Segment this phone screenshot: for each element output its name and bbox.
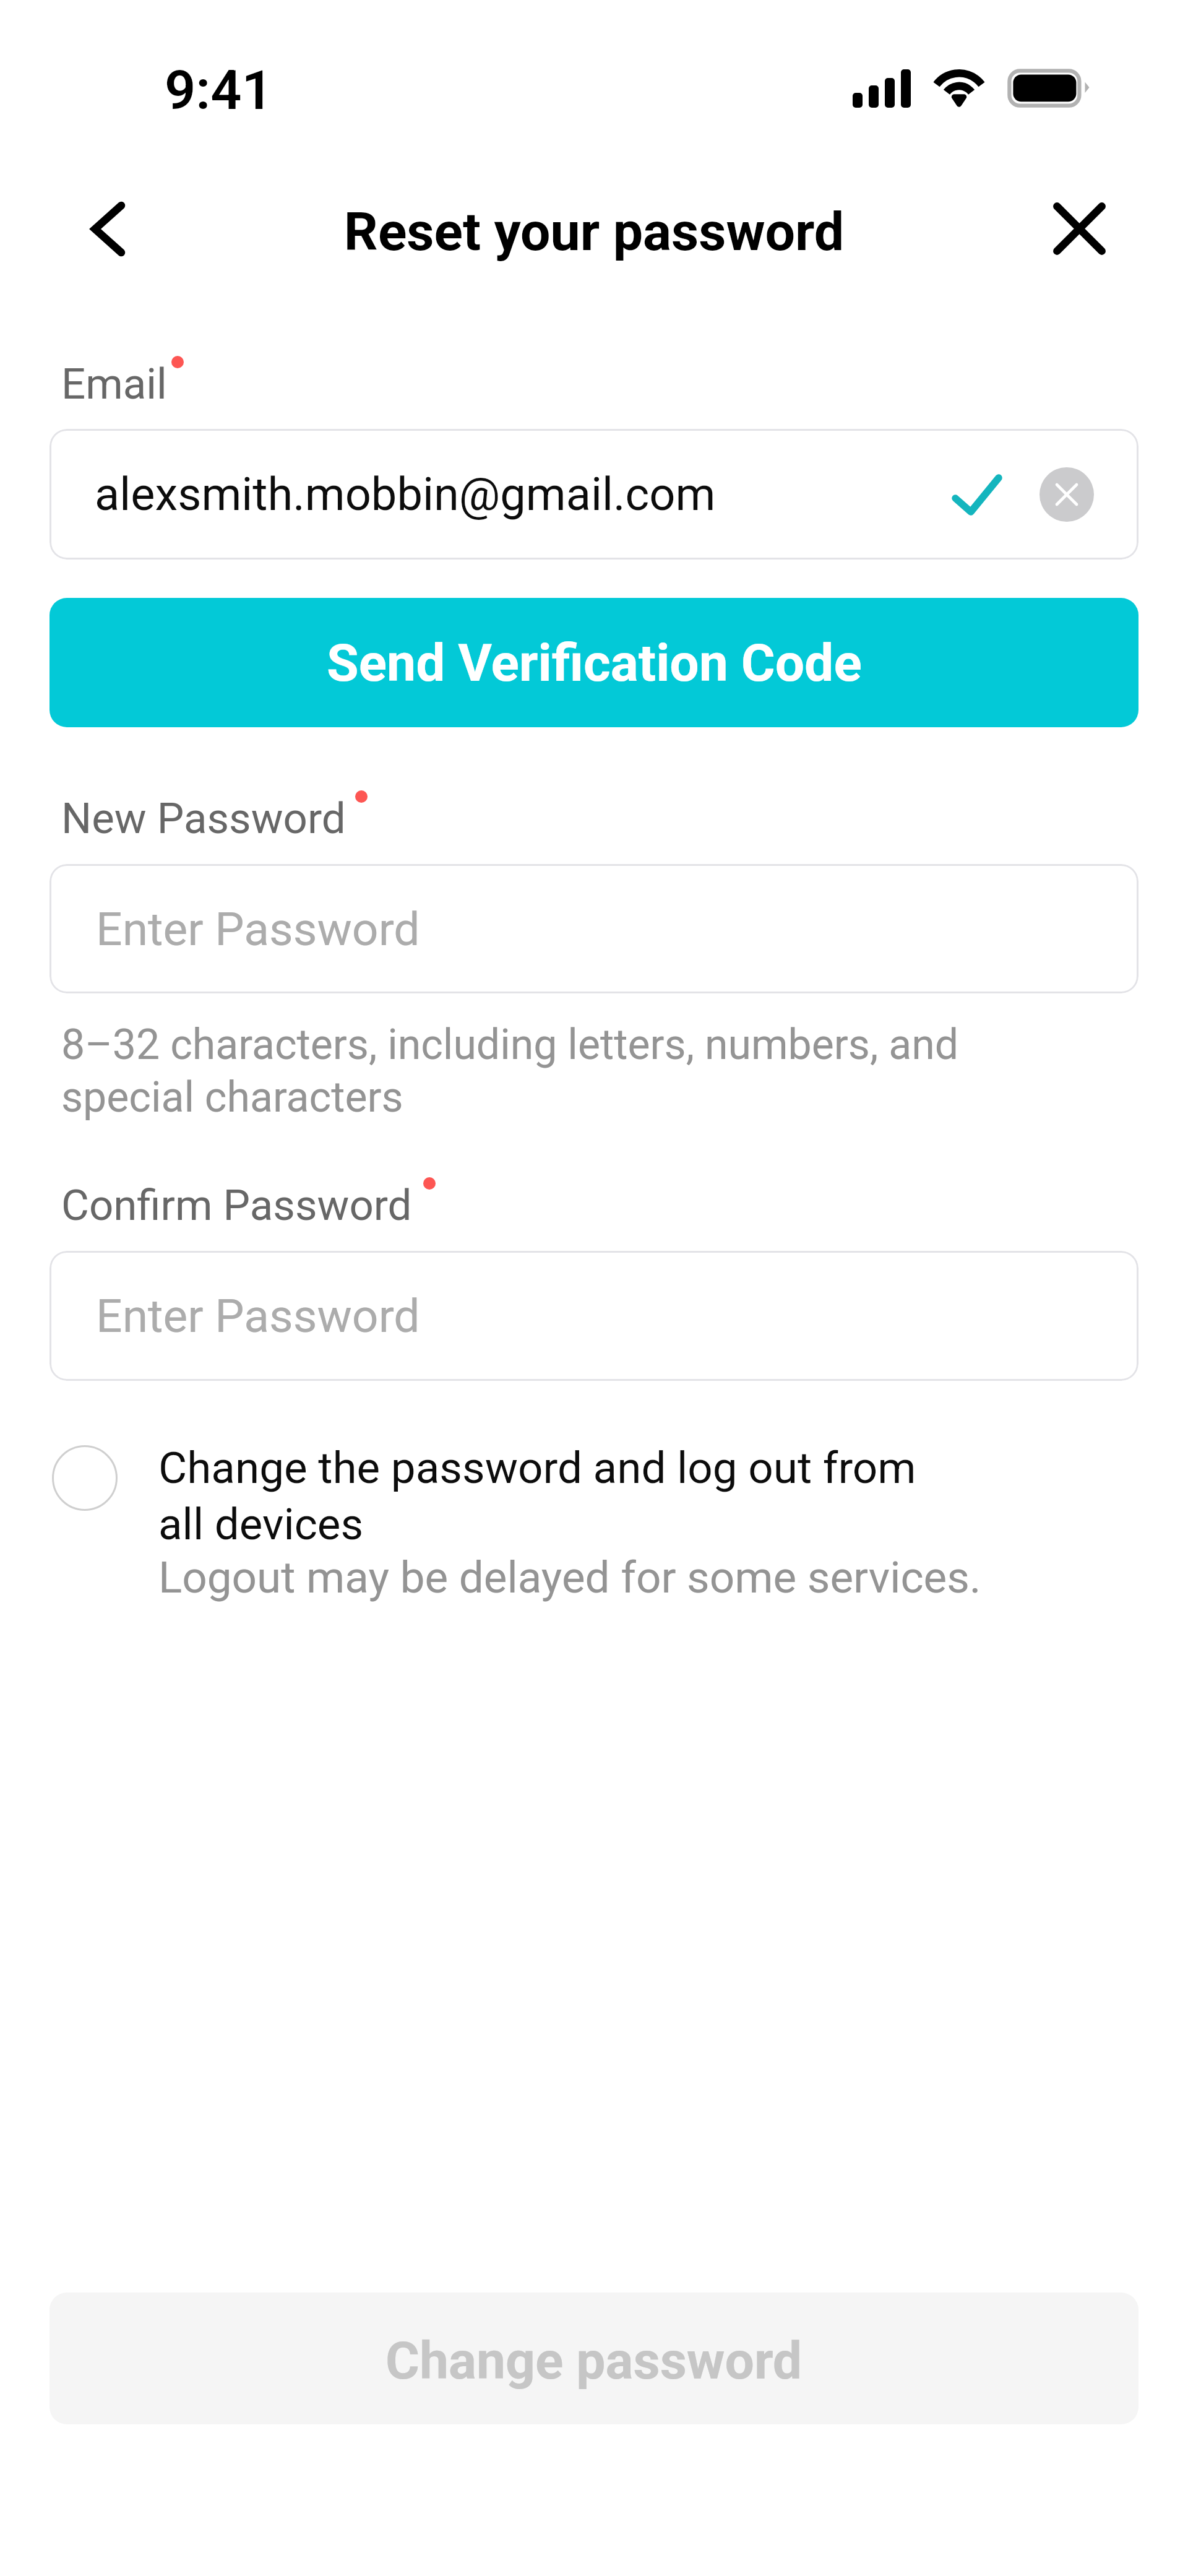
staticText: alexsmith.mobbin@gmail.com <box>95 467 716 521</box>
button[interactable]: Send Verification Code <box>49 598 1138 727</box>
staticText: 9:41 <box>165 58 273 122</box>
staticText: Enter Password <box>96 1289 420 1343</box>
staticText: Enter Password <box>96 902 420 956</box>
staticText: Logout may be delayed for some services. <box>158 1552 981 1603</box>
button[interactable]: Enter Password <box>49 1251 1138 1381</box>
button[interactable]: Close <box>1039 189 1120 269</box>
staticText: Change password <box>385 2330 803 2391</box>
button[interactable]: alexsmith.mobbin@gmail.com <box>49 429 1138 560</box>
staticText: Confirm Password <box>61 1180 412 1230</box>
staticText: Email <box>61 359 167 409</box>
button[interactable]: Enter Password <box>49 864 1138 993</box>
button[interactable]: Change the password and log out from all… <box>49 1442 1015 1603</box>
staticText: New Password <box>61 793 346 844</box>
staticText: 8–32 characters, including letters, numb… <box>61 1020 959 1122</box>
staticText: Send Verification Code <box>327 633 862 693</box>
button[interactable]: Clear email <box>1039 467 1094 522</box>
staticText: Reset your password <box>0 201 1188 263</box>
button[interactable]: Change password <box>49 2293 1138 2424</box>
staticText: Change the password and log out from all… <box>158 1442 916 1550</box>
button[interactable]: Back <box>68 186 148 266</box>
